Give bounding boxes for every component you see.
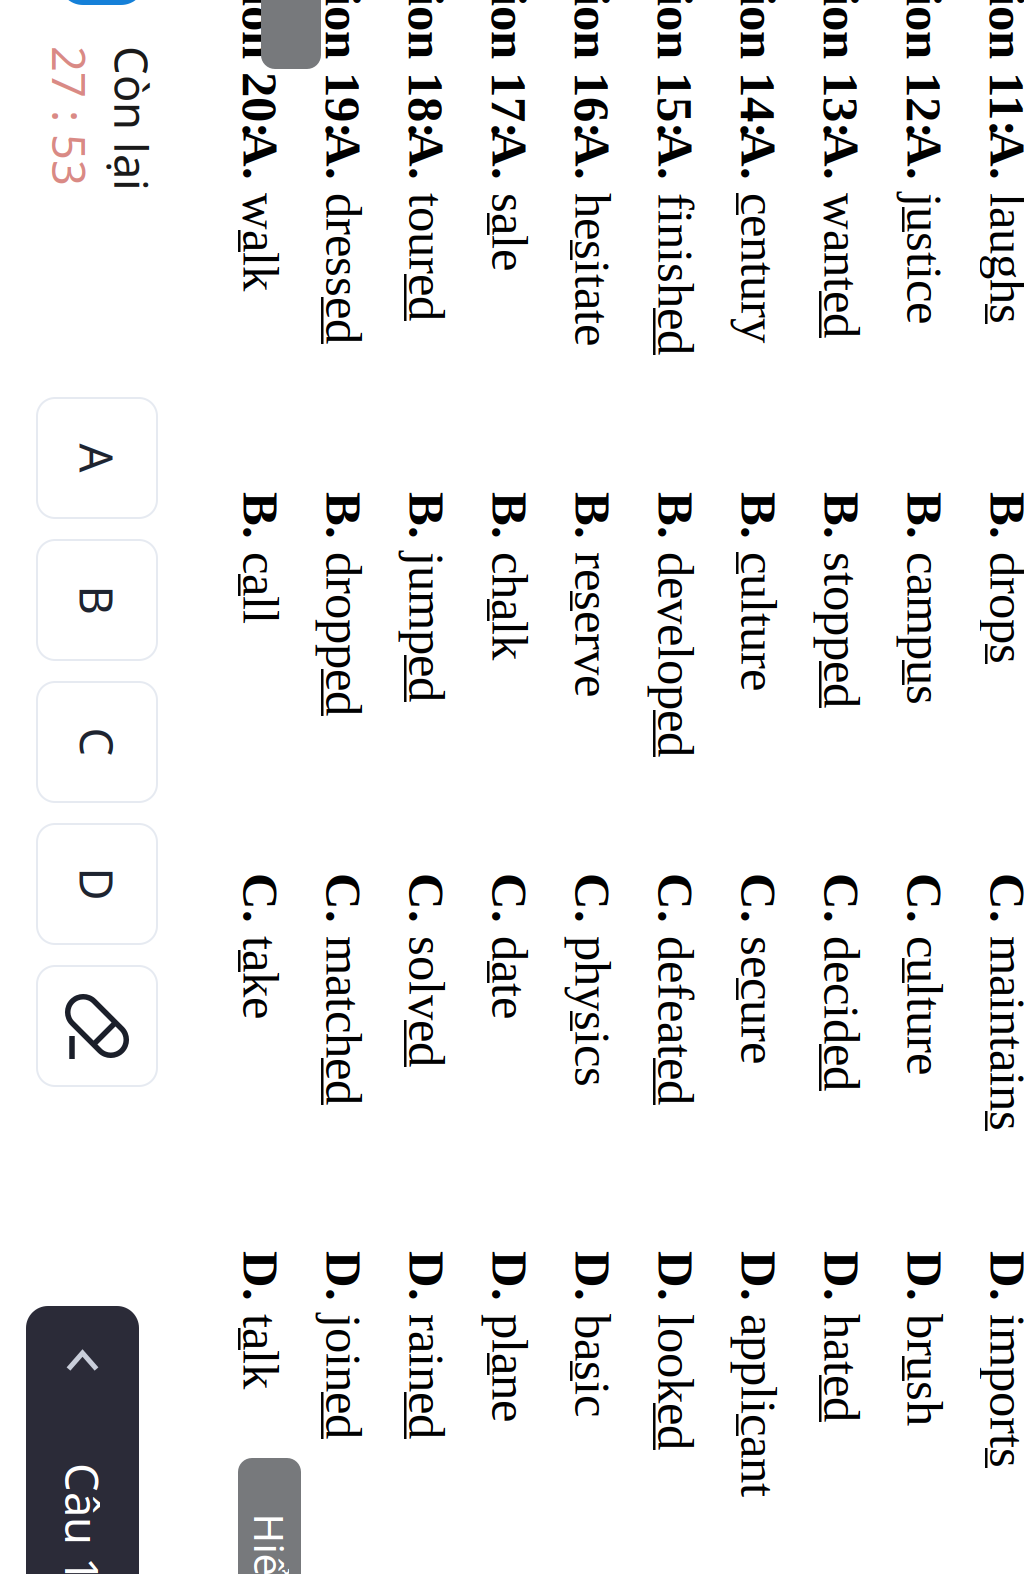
staticText: B. reserve (217, 679, 422, 734)
staticText: A. century (0, 513, 68, 568)
button[interactable]: D (549, 1142, 669, 1262)
button[interactable]: Question 20: (0, 1011, 1024, 1067)
button[interactable]: Question 12: (0, 347, 1024, 403)
button[interactable]: Question 16: (0, 679, 1024, 735)
staticText: C. maintains (598, 264, 856, 319)
staticText: D. joined (976, 928, 1024, 983)
staticText: D. talk (976, 1011, 1024, 1066)
staticText: D. applicant (976, 513, 1024, 568)
staticText: B. jumped (217, 845, 427, 900)
staticText: C. defeated (598, 596, 830, 651)
staticText: C. take (598, 1011, 744, 1066)
button[interactable]: Question 15: (0, 596, 1024, 652)
button[interactable]: Question 11: (0, 264, 1024, 320)
button[interactable]: Question 19: (0, 928, 1024, 984)
staticText: A. dressed (0, 928, 69, 983)
staticText: D. imports (976, 264, 1024, 319)
staticText: C. solved (598, 845, 792, 900)
button[interactable]: B (265, 1142, 385, 1262)
staticText: B. call (217, 1011, 349, 1066)
staticText: B. culture (217, 513, 416, 568)
staticText: A. finished (0, 596, 80, 651)
staticText: C. secure (598, 513, 789, 568)
staticText: B. developed (217, 596, 482, 651)
staticText: C. culture (598, 347, 800, 402)
button[interactable]: Xoá đáp án (691, 1142, 811, 1262)
button[interactable]: Question 14: (0, 513, 1024, 569)
button[interactable]: C (407, 1142, 527, 1262)
staticText: B. drops (217, 264, 389, 319)
staticText: D. looked (976, 596, 1024, 651)
staticText: A. hesitate (0, 679, 71, 734)
staticText: B. dropped (217, 928, 441, 983)
staticText: D. rained (976, 845, 1024, 900)
staticText: C. physics (598, 679, 812, 734)
staticText: C. matched (598, 928, 830, 983)
staticText: A. wanted (0, 430, 63, 485)
staticText: A. toured (0, 845, 46, 900)
button[interactable]: Question 13: (0, 430, 1024, 486)
button[interactable]: Question 18: (0, 845, 1024, 901)
